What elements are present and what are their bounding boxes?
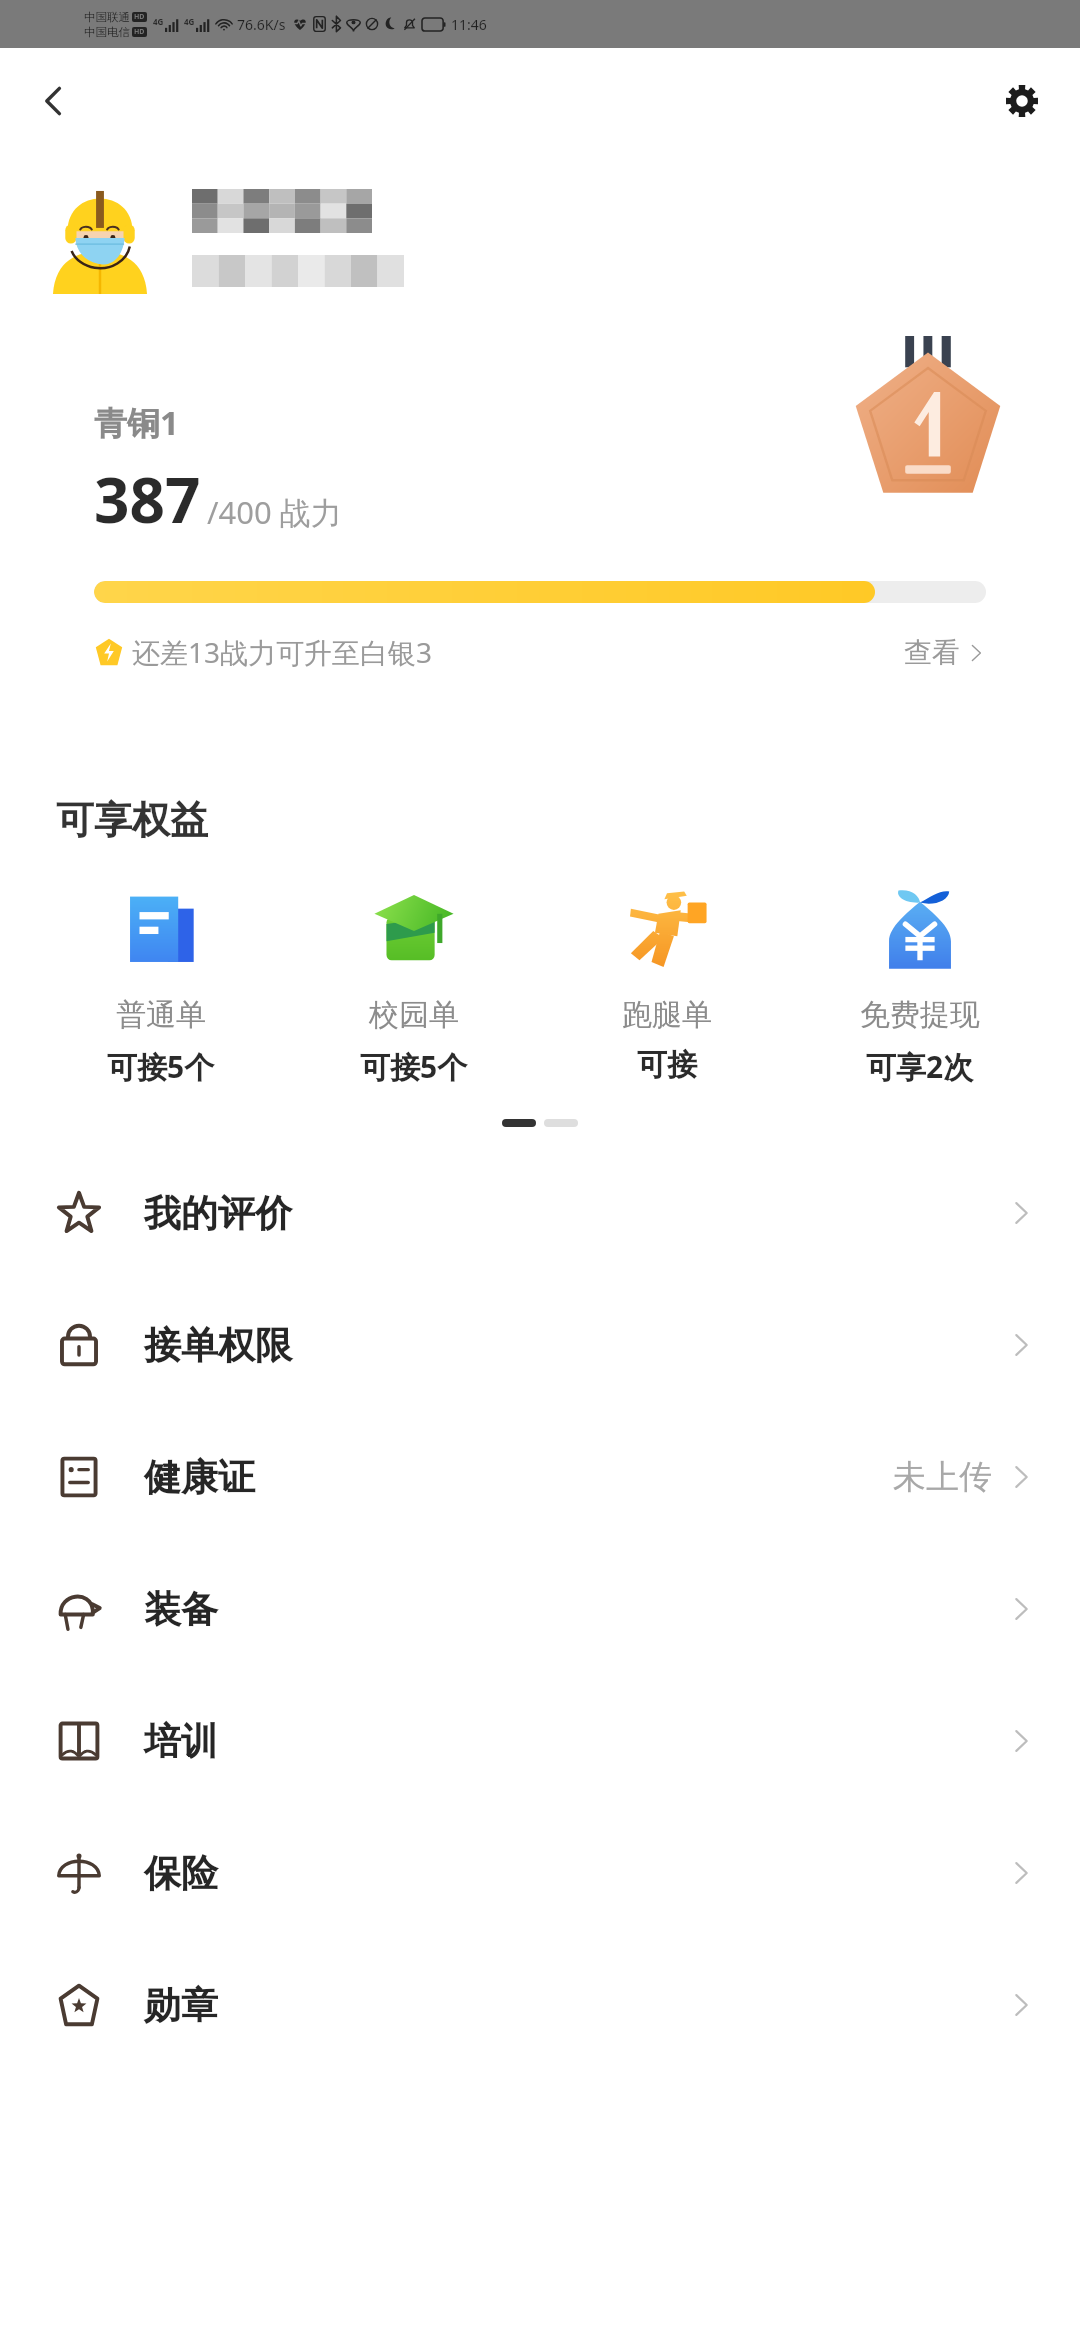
staticText: 装备 [144, 1586, 218, 1633]
staticText: 普通单 [116, 996, 206, 1034]
staticText: 未上传 [893, 1456, 992, 1498]
button[interactable]: 普通单 [34, 888, 287, 1087]
staticText: 校园单 [369, 996, 459, 1034]
button[interactable]: 培训 [0, 1675, 1080, 1807]
staticText: 中国电信 [84, 25, 130, 39]
button[interactable]: Settings [994, 73, 1050, 129]
staticText: 76.6K/s [237, 15, 286, 34]
staticText: 可享权益 [56, 796, 208, 844]
staticText: 11:46 [451, 15, 487, 34]
staticText: 接单权限 [144, 1322, 292, 1369]
button[interactable]: 青铜1 [42, 336, 1038, 766]
staticText: 可享2次 [866, 1046, 974, 1087]
button[interactable]: 校园单 [287, 888, 540, 1087]
staticText: 可接5个 [360, 1046, 468, 1087]
button[interactable]: 查看 [904, 635, 986, 670]
staticText: 跑腿单 [622, 996, 712, 1034]
staticText: 4G [153, 16, 164, 27]
staticText: 免费提现 [860, 996, 980, 1034]
button[interactable]: 装备 [0, 1543, 1080, 1675]
button[interactable]: 跑腿单 [540, 888, 793, 1084]
staticText: 保险 [144, 1850, 218, 1897]
staticText: 还差13战力可升至白银3 [132, 633, 433, 671]
staticText: 4G [184, 16, 195, 27]
staticText: 青铜1 [94, 400, 179, 445]
staticText: 健康证 [144, 1454, 255, 1501]
button[interactable]: 接单权限 [0, 1279, 1080, 1411]
staticText: 中国联通 [84, 10, 130, 24]
staticText: 可接5个 [107, 1046, 215, 1087]
staticText: 我的评价 [144, 1190, 292, 1237]
staticText: 勋章 [144, 1982, 218, 2029]
button[interactable]: 免费提现 [793, 888, 1046, 1087]
button[interactable]: 我的评价 [0, 1147, 1080, 1279]
staticText: /400 战力 [207, 491, 342, 533]
staticText: 可接 [637, 1046, 697, 1084]
staticText: HD [134, 12, 145, 22]
staticText: HD [134, 27, 145, 37]
button[interactable]: 健康证 [0, 1411, 1080, 1543]
button[interactable]: 勋章 [0, 1939, 1080, 2071]
staticText: 查看 [904, 635, 960, 670]
staticText: 培训 [144, 1718, 218, 1765]
staticText: 387 [94, 457, 201, 541]
button[interactable]: 保险 [0, 1807, 1080, 1939]
button[interactable]: Back [26, 73, 82, 129]
